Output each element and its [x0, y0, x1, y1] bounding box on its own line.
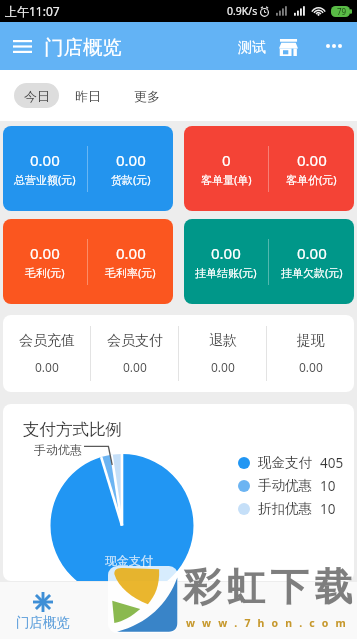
button[interactable]: 0.00	[184, 219, 354, 304]
staticText: 退款	[209, 332, 237, 350]
staticText: 彩虹下载	[183, 563, 357, 611]
staticText: 手动优惠	[258, 477, 312, 494]
staticText: 门店概览	[16, 614, 70, 631]
button[interactable]: 会员充值	[3, 332, 90, 375]
button[interactable]: 门店概览	[0, 582, 85, 631]
button[interactable]: 0.00	[3, 219, 173, 304]
button[interactable]: 会员支付	[91, 332, 178, 375]
staticText: 会员支付	[107, 332, 163, 350]
button[interactable]: 昨日	[69, 83, 107, 108]
staticText: 昨日	[75, 88, 101, 104]
staticText: 毛利(元)	[25, 265, 65, 280]
staticText: 挂单结账(元)	[195, 265, 257, 280]
staticText: 0.00	[211, 243, 241, 263]
staticText: 会员充值	[19, 332, 75, 350]
staticText: 挂单欠款(元)	[281, 265, 343, 280]
button[interactable]: 0.00	[3, 126, 173, 211]
staticText: 0.00	[299, 359, 323, 375]
button[interactable]: 今日	[14, 83, 59, 108]
staticText: 405	[320, 454, 344, 472]
staticText: 0.00	[116, 150, 146, 170]
button[interactable]: 测试	[230, 27, 274, 65]
staticText: 79	[337, 6, 347, 17]
staticText: 0	[222, 150, 231, 170]
button[interactable]: Select store	[274, 22, 310, 70]
staticText: w w w . 7 h o n . c o m	[186, 616, 348, 630]
staticText: 今日	[24, 88, 50, 104]
staticText: 客单量(单)	[201, 172, 252, 187]
staticText: 0.00	[123, 359, 147, 375]
staticText: 总营业额(元)	[14, 172, 76, 187]
staticText: 折扣优惠	[258, 500, 312, 517]
staticText: 10	[320, 500, 336, 518]
button[interactable]: Open navigation menu	[0, 22, 44, 70]
button[interactable]: 更多	[128, 83, 166, 108]
staticText: 货款(元)	[111, 172, 151, 187]
staticText: 0.00	[35, 359, 59, 375]
button[interactable]: 0	[184, 126, 354, 211]
staticText: 更多	[134, 88, 160, 104]
staticText: 10	[320, 477, 336, 495]
staticText: 提现	[297, 332, 325, 350]
button[interactable]: 提现	[267, 332, 354, 375]
staticText: 毛利率(元)	[105, 265, 156, 280]
staticText: 现金支付	[105, 553, 153, 568]
staticText: 现金支付	[258, 454, 312, 471]
staticText: 支付方式比例	[23, 419, 122, 440]
staticText: 0.00	[211, 359, 235, 375]
staticText: 0.00	[30, 243, 60, 263]
staticText: 0.00	[297, 243, 327, 263]
staticText: 0.00	[297, 150, 327, 170]
button[interactable]: More options	[310, 22, 357, 70]
staticText: 测试	[238, 39, 266, 57]
staticText: 上午11:07	[5, 3, 60, 19]
staticText: 0.00	[116, 243, 146, 263]
staticText: 门店概览	[44, 35, 122, 60]
staticText: 客单价(元)	[286, 172, 337, 187]
staticText: 0.00	[30, 150, 60, 170]
staticText: 手动优惠	[34, 442, 82, 457]
button[interactable]: 退款	[179, 332, 266, 375]
staticText: 0.9K/s	[227, 4, 258, 18]
